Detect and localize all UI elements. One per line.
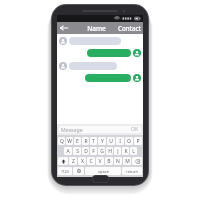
button[interactable]: V	[96, 157, 104, 165]
button[interactable]: Z	[69, 157, 77, 165]
staticText: A	[66, 148, 70, 155]
button[interactable]: S	[73, 147, 81, 155]
staticText: L	[132, 148, 135, 155]
button[interactable]: Shift	[58, 157, 68, 165]
button[interactable]	[59, 74, 141, 82]
button[interactable]: Back	[57, 22, 71, 34]
staticText: R	[84, 138, 88, 145]
button[interactable]: G	[98, 147, 105, 155]
button[interactable]: W	[66, 137, 73, 145]
staticText: Q	[60, 138, 64, 145]
button[interactable]: ?123	[58, 167, 72, 175]
staticText: E	[76, 138, 79, 145]
staticText: ?123	[61, 169, 69, 174]
staticText: T	[92, 138, 95, 145]
staticText: K	[124, 148, 128, 155]
button[interactable]: space	[85, 167, 121, 175]
staticText: C	[89, 158, 93, 165]
other: Home	[93, 176, 108, 182]
button[interactable]: O	[125, 137, 133, 145]
button[interactable]: Contact	[118, 24, 141, 32]
button[interactable]: Y	[98, 137, 106, 145]
staticText: D	[84, 148, 88, 155]
staticText: Y	[101, 138, 104, 145]
button[interactable]: B	[105, 157, 113, 165]
button[interactable]: M	[123, 157, 131, 165]
button[interactable]: T	[90, 137, 97, 145]
staticText: O	[127, 138, 131, 145]
button[interactable]: P	[134, 137, 142, 145]
button[interactable]	[59, 49, 141, 57]
staticText: W	[67, 138, 72, 145]
staticText: F	[92, 148, 95, 155]
staticText: X	[81, 158, 84, 165]
staticText: I	[119, 138, 121, 145]
button[interactable]: K	[122, 147, 129, 155]
staticText: G	[100, 148, 104, 155]
staticText: M	[125, 158, 130, 165]
button[interactable]	[59, 62, 141, 70]
staticText: space	[98, 169, 109, 174]
button[interactable]: A	[64, 147, 72, 155]
staticText: OK	[131, 126, 139, 133]
button[interactable]: F	[90, 147, 97, 155]
button[interactable]: E	[74, 137, 81, 145]
button[interactable]: J	[114, 147, 121, 155]
button[interactable]: Message	[59, 126, 141, 133]
button[interactable]: N	[114, 157, 122, 165]
button[interactable]: Name	[87, 24, 106, 33]
button[interactable]	[59, 37, 141, 45]
button[interactable]: D	[82, 147, 89, 155]
button[interactable]: I	[116, 137, 124, 145]
staticText: V	[98, 158, 102, 165]
button[interactable]: H	[106, 147, 113, 155]
staticText: N	[116, 158, 120, 165]
button[interactable]: Change language	[73, 167, 84, 175]
button[interactable]: L	[130, 147, 137, 155]
staticText: H	[108, 148, 112, 155]
button[interactable]: return	[122, 167, 142, 175]
button[interactable]: R	[82, 137, 89, 145]
staticText: S	[76, 148, 79, 155]
staticText: P	[136, 138, 140, 145]
staticText: Message	[61, 126, 83, 133]
button[interactable]: U	[107, 137, 115, 145]
staticText: B	[107, 158, 111, 165]
button[interactable]: Q	[58, 137, 65, 145]
button[interactable]: C	[87, 157, 95, 165]
button[interactable]: Backspace	[132, 157, 142, 165]
staticText: Z	[72, 158, 75, 165]
staticText: return	[126, 169, 138, 174]
staticText: J	[117, 148, 119, 155]
button[interactable]: X	[78, 157, 86, 165]
staticText: U	[109, 138, 113, 145]
